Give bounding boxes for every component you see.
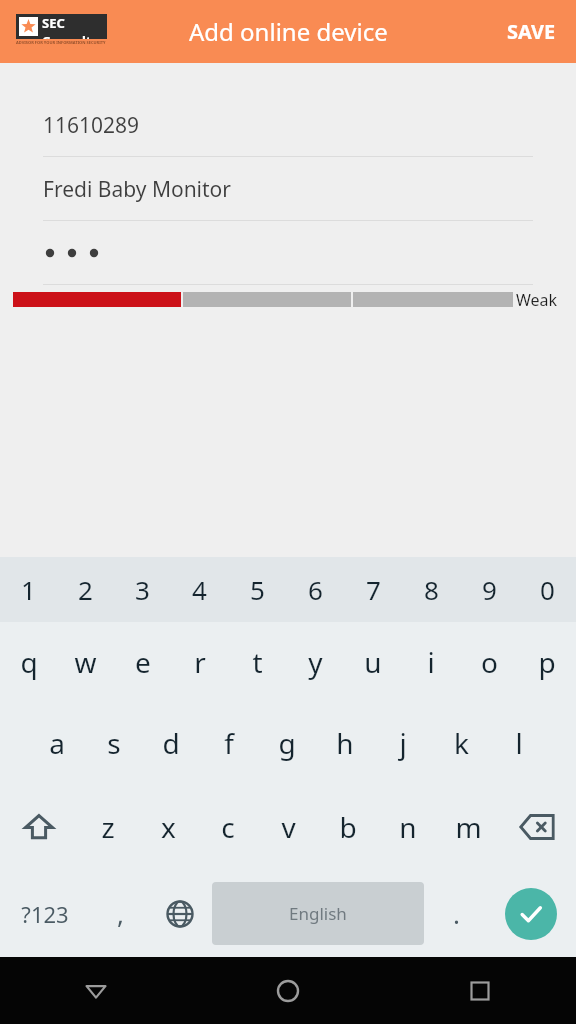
staticText: ADVISOR FOR YOUR INFORMATION SECURITY: [16, 40, 106, 45]
staticText: j: [399, 724, 407, 762]
button[interactable]: g: [258, 702, 316, 784]
button[interactable]: .: [426, 870, 486, 957]
staticText: o: [481, 643, 498, 681]
button[interactable]: 3: [114, 557, 171, 622]
button[interactable]: ,: [90, 870, 150, 957]
staticText: 7: [366, 572, 381, 607]
button[interactable]: 8: [402, 557, 460, 622]
button[interactable]: 7: [344, 557, 402, 622]
button[interactable]: 4: [171, 557, 228, 622]
staticText: g: [278, 724, 296, 762]
button[interactable]: a: [28, 702, 85, 784]
button[interactable]: f: [200, 702, 258, 784]
button[interactable]: r: [171, 622, 228, 702]
staticText: 9: [482, 572, 497, 607]
button[interactable]: k: [432, 702, 490, 784]
staticText: 3: [135, 572, 150, 607]
staticText: Fredi Baby Monitor: [43, 175, 231, 204]
staticText: s: [107, 724, 121, 762]
button[interactable]: q: [0, 622, 57, 702]
staticText: 8: [424, 572, 439, 607]
staticText: q: [20, 643, 38, 681]
button[interactable]: Enter: [486, 870, 576, 957]
button[interactable]: h: [316, 702, 374, 784]
staticText: r: [194, 643, 206, 681]
staticText: t: [252, 643, 263, 681]
staticText: i: [427, 643, 435, 681]
staticText: d: [162, 724, 180, 762]
staticText: 2: [78, 572, 93, 607]
staticText: z: [101, 808, 115, 846]
button[interactable]: ?123: [0, 870, 90, 957]
staticText: 4: [192, 572, 207, 607]
staticText: 5: [250, 572, 265, 607]
button[interactable]: Change language: [150, 870, 210, 957]
staticText: w: [74, 643, 97, 681]
button[interactable]: 0: [518, 557, 576, 622]
button[interactable]: [0, 221, 576, 285]
staticText: n: [399, 808, 417, 846]
button[interactable]: 9: [460, 557, 518, 622]
button[interactable]: Home: [192, 957, 384, 1024]
button[interactable]: j: [374, 702, 432, 784]
staticText: 1: [21, 572, 36, 607]
button[interactable]: Recents: [384, 957, 576, 1024]
staticText: m: [455, 808, 482, 846]
staticText: y: [308, 643, 323, 681]
button[interactable]: v: [258, 784, 318, 870]
button[interactable]: 1: [0, 557, 57, 622]
staticText: ?123: [21, 899, 69, 929]
button[interactable]: x: [138, 784, 198, 870]
staticText: SEC Consult: [42, 14, 104, 39]
staticText: 0: [540, 572, 555, 607]
staticText: k: [454, 724, 469, 762]
staticText: Add online device: [189, 15, 388, 48]
button[interactable]: Fredi Baby Monitor: [0, 157, 576, 221]
button[interactable]: English: [212, 882, 424, 945]
button[interactable]: t: [228, 622, 286, 702]
button[interactable]: d: [142, 702, 200, 784]
staticText: .: [453, 896, 460, 931]
staticText: e: [135, 643, 151, 681]
staticText: 6: [308, 572, 323, 607]
button[interactable]: 6: [286, 557, 344, 622]
button[interactable]: Shift: [0, 784, 78, 870]
staticText: 11610289: [43, 111, 140, 140]
staticText: p: [538, 643, 556, 681]
staticText: x: [161, 808, 176, 846]
button[interactable]: p: [518, 622, 576, 702]
button[interactable]: Back: [0, 957, 192, 1024]
button[interactable]: y: [286, 622, 344, 702]
button[interactable]: m: [438, 784, 498, 870]
staticText: v: [281, 808, 296, 846]
staticText: c: [221, 808, 235, 846]
button[interactable]: 5: [228, 557, 286, 622]
button[interactable]: 11610289: [0, 93, 576, 157]
button[interactable]: 2: [57, 557, 114, 622]
button[interactable]: n: [378, 784, 438, 870]
button[interactable]: l: [490, 702, 548, 784]
staticText: l: [515, 724, 523, 762]
staticText: f: [224, 724, 234, 762]
staticText: a: [49, 724, 65, 762]
button[interactable]: e: [114, 622, 171, 702]
staticText: SAVE: [507, 18, 556, 45]
button[interactable]: Backspace: [498, 784, 576, 870]
staticText: u: [364, 643, 382, 681]
staticText: ,: [117, 896, 124, 931]
button[interactable]: z: [78, 784, 138, 870]
staticText: h: [336, 724, 354, 762]
button[interactable]: b: [318, 784, 378, 870]
button[interactable]: s: [85, 702, 142, 784]
button[interactable]: i: [402, 622, 460, 702]
staticText: English: [289, 902, 347, 925]
button[interactable]: SEC Consult logo: [16, 14, 107, 45]
staticText: b: [339, 808, 357, 846]
button[interactable]: o: [460, 622, 518, 702]
staticText: Weak: [516, 289, 558, 309]
button[interactable]: SAVE: [487, 0, 576, 63]
button[interactable]: u: [344, 622, 402, 702]
button[interactable]: c: [198, 784, 258, 870]
button[interactable]: w: [57, 622, 114, 702]
